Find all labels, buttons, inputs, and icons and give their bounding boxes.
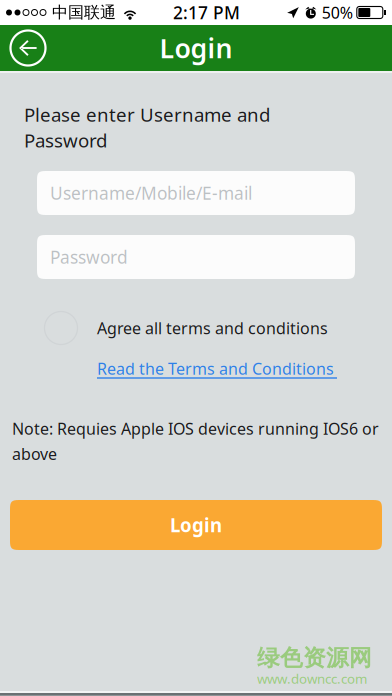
button[interactable]: Read the Terms and Conditions bbox=[97, 358, 338, 379]
button[interactable]: Back bbox=[6, 26, 50, 70]
staticText: Note: Requies Apple IOS devices running … bbox=[12, 418, 379, 464]
staticText: Password bbox=[50, 245, 128, 268]
staticText: 中国联通 bbox=[52, 3, 116, 22]
staticText: 2:17 PM bbox=[173, 1, 240, 24]
staticText: Agree all terms and conditions bbox=[97, 317, 328, 339]
staticText: www.downcc.com bbox=[257, 670, 367, 687]
staticText: Username/Mobile/E-mail bbox=[50, 181, 252, 204]
staticText: 50% bbox=[322, 2, 353, 23]
staticText: 绿色资源网 bbox=[257, 644, 372, 672]
button[interactable]: Login bbox=[10, 500, 382, 550]
staticText: Login bbox=[170, 513, 222, 537]
staticText: Login bbox=[159, 30, 232, 66]
button[interactable]: Agree all terms and conditions bbox=[37, 304, 337, 352]
staticText: Please enter Username and Password bbox=[24, 102, 270, 153]
staticText: Read the Terms and Conditions bbox=[97, 358, 338, 379]
